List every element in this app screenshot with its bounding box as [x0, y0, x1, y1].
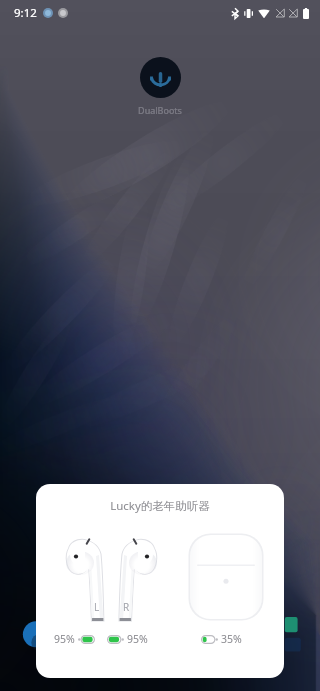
- button[interactable]: Lucky的老年助听器: [36, 484, 284, 678]
- staticText: 95%: [127, 632, 148, 646]
- staticText: 9:12: [14, 5, 37, 21]
- staticText: 35%: [221, 632, 242, 646]
- staticText: Lucky的老年助听器: [110, 498, 210, 514]
- staticText: 95%: [54, 632, 75, 646]
- staticText: R: [123, 600, 130, 614]
- staticText: L: [94, 600, 100, 614]
- staticText: DualBoots: [138, 104, 182, 116]
- button[interactable]: DualBoots app: [140, 57, 181, 98]
